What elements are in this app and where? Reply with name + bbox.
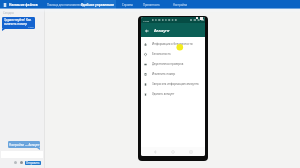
button[interactable]: Смайлик: [14, 161, 17, 164]
button[interactable]: Удалить аккаунт: [141, 89, 205, 99]
button[interactable]: Изменить номер: [141, 69, 205, 79]
staticText: Изменить номер: [152, 72, 176, 76]
staticText: Удалить аккаунт: [152, 92, 175, 96]
staticText: Запросить информацию аккаунта: [152, 82, 199, 86]
button[interactable]: Приватность: [143, 0, 160, 9]
button[interactable]: Настройки: [173, 0, 188, 9]
button[interactable]: Вложение: [20, 161, 23, 164]
staticText: Аккаунт: [154, 28, 170, 33]
staticText: Помощь для пользователей: [47, 3, 84, 7]
staticText: Настройки: [173, 3, 188, 7]
staticText: Двухэтапная проверка: [152, 62, 184, 66]
button[interactable]: Главный экран: [169, 148, 177, 156]
button[interactable]: Назад: [151, 148, 159, 156]
staticText: Безопасность: [152, 52, 171, 56]
button[interactable]: Запросить информацию аккаунта: [141, 79, 205, 89]
button[interactable]: Справка: [122, 0, 133, 9]
staticText: Название файлов: [9, 3, 38, 7]
button[interactable]: Помощь для пользователей: [47, 0, 84, 9]
staticText: Здравствуйте! Как сменить номер: [4, 18, 32, 26]
button[interactable]: Удобное управление: [81, 0, 115, 9]
button[interactable]: Назад: [143, 27, 150, 34]
button[interactable]: Двухэтапная проверка: [141, 59, 205, 69]
staticText: Приватность: [143, 3, 160, 7]
button[interactable]: Безопасность: [141, 49, 205, 59]
button[interactable]: Отправить: [25, 161, 41, 165]
staticText: Отправить: [26, 161, 40, 165]
staticText: Информация о безопасности: [152, 42, 193, 46]
staticText: 14:22: [143, 19, 150, 22]
staticText: Справка: [122, 3, 133, 7]
staticText: Настройки — Аккаунт: [9, 143, 40, 147]
staticText: Сегодня: [3, 11, 14, 15]
button[interactable]: Информация о безопасности: [141, 39, 205, 49]
staticText: Удобное управление: [81, 3, 115, 7]
staticText: 14:20: [28, 26, 34, 29]
button[interactable]: Обзор: [187, 148, 195, 156]
